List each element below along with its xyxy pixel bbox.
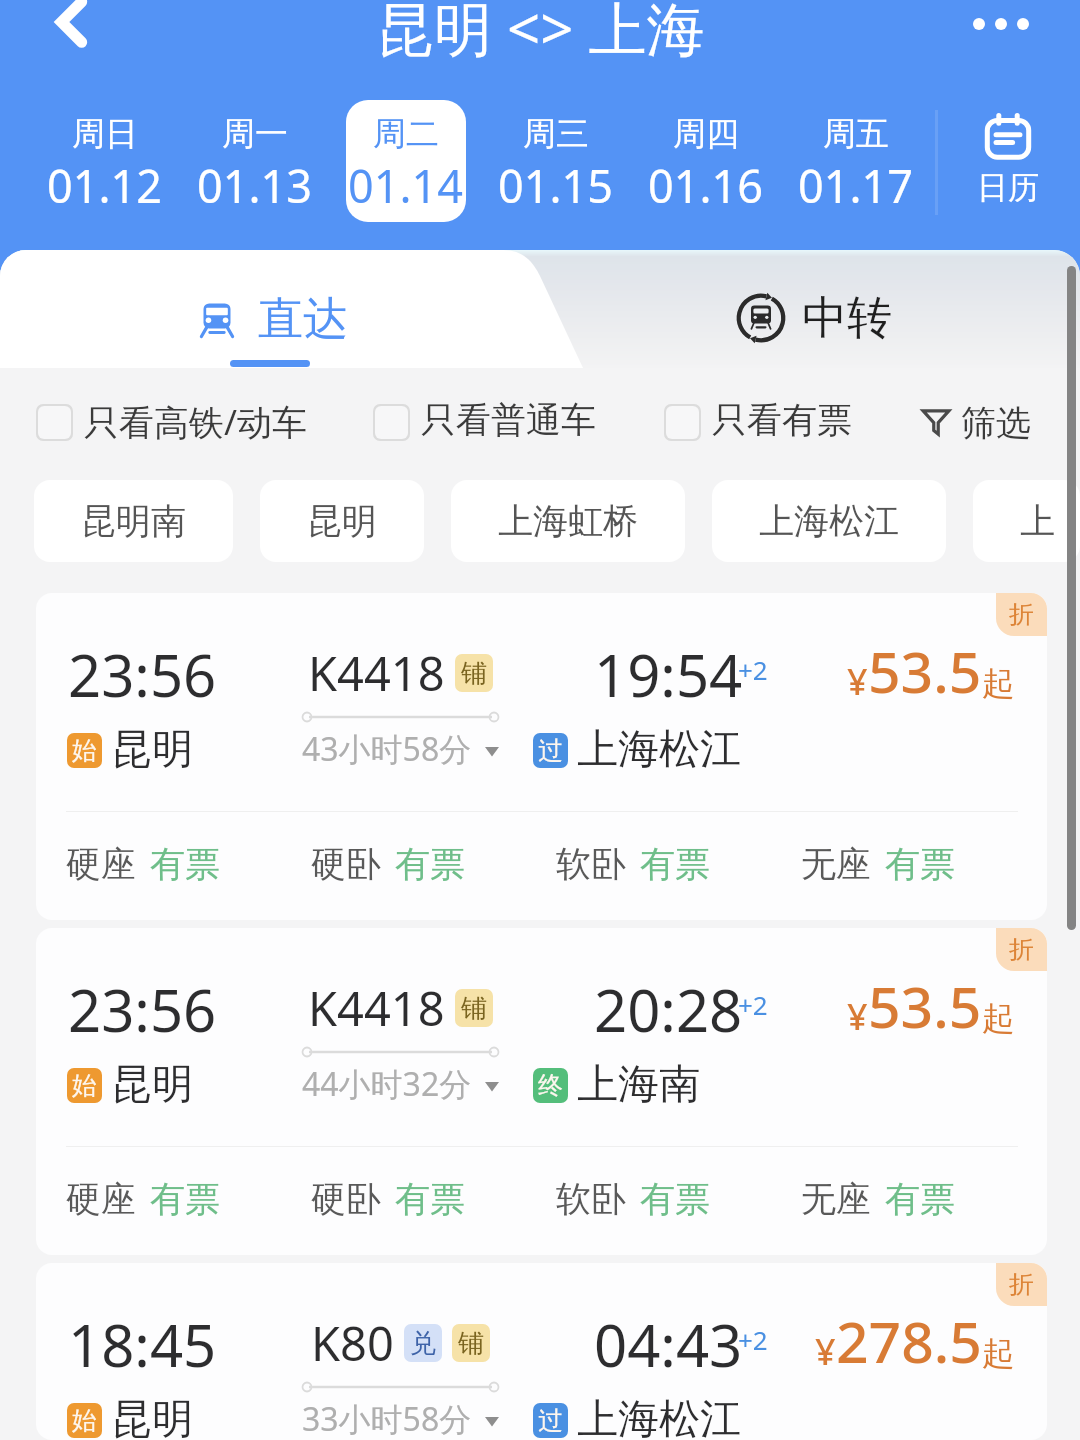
staticText: 23:56: [68, 635, 217, 714]
button[interactable]: Calendar: [948, 100, 1068, 222]
staticText: 只看高铁/动车: [84, 398, 308, 446]
button[interactable]: 周五: [796, 100, 916, 222]
staticText: 有票: [640, 842, 710, 886]
button[interactable]: 昆明南: [34, 480, 233, 562]
button[interactable]: More options: [965, 0, 1037, 60]
staticText: 始: [72, 735, 97, 766]
staticText: 无座: [801, 842, 871, 886]
staticText: 昆明 <> 上海: [376, 0, 705, 67]
staticText: 起: [982, 998, 1015, 1040]
button[interactable]: 上: [973, 480, 1080, 562]
staticText: 过: [538, 1405, 563, 1436]
staticText: 筛选: [961, 401, 1031, 445]
staticText: 278.5: [836, 1302, 982, 1380]
staticText: +2: [738, 987, 768, 1022]
button[interactable]: 周三: [496, 100, 616, 222]
button[interactable]: 直达: [198, 296, 348, 353]
staticText: 有票: [640, 1177, 710, 1221]
staticText: 01.12: [47, 155, 163, 216]
staticText: 04:43: [594, 1305, 743, 1384]
staticText: 铺: [461, 657, 487, 690]
staticText: 折: [1009, 1269, 1034, 1300]
staticText: 有票: [150, 1177, 220, 1221]
staticText: 折: [1009, 599, 1034, 630]
staticText: 硬座: [66, 842, 136, 886]
staticText: ¥: [847, 657, 868, 706]
staticText: 19:54: [594, 635, 743, 714]
staticText: 始: [72, 1070, 97, 1101]
staticText: 上海松江: [577, 1394, 741, 1440]
staticText: 中转: [802, 290, 892, 347]
staticText: 始: [72, 1405, 97, 1436]
staticText: 周四: [673, 113, 739, 155]
staticText: 01.13: [197, 155, 313, 216]
staticText: 昆明: [111, 1059, 193, 1111]
staticText: 周五: [823, 113, 889, 155]
button[interactable]: 只看有票: [664, 398, 852, 442]
button[interactable]: 周四: [646, 100, 766, 222]
staticText: 只看有票: [712, 398, 852, 442]
staticText: 起: [982, 663, 1015, 705]
staticText: 软卧: [556, 1177, 626, 1221]
staticText: 只看普通车: [421, 398, 596, 442]
staticText: 上海虹桥: [498, 499, 638, 543]
staticText: 硬座: [66, 1177, 136, 1221]
staticText: 53.5: [868, 967, 982, 1045]
button[interactable]: 筛选: [922, 405, 1031, 449]
button[interactable]: 只看普通车: [373, 398, 596, 442]
staticText: 有票: [885, 842, 955, 886]
staticText: 33小时58分: [302, 1397, 472, 1440]
staticText: 01.15: [498, 155, 614, 216]
staticText: 有票: [150, 842, 220, 886]
staticText: 硬卧: [311, 842, 381, 886]
staticText: 昆明: [111, 724, 193, 776]
button[interactable]: 周一: [195, 100, 315, 222]
staticText: 日历: [977, 168, 1039, 207]
button[interactable]: 上海松江: [712, 480, 946, 562]
staticText: 终: [538, 1070, 563, 1101]
staticText: 上海松江: [577, 724, 741, 776]
button[interactable]: 周二: [346, 100, 466, 222]
staticText: 有票: [395, 1177, 465, 1221]
staticText: 折: [1009, 934, 1034, 965]
staticText: 过: [538, 735, 563, 766]
staticText: 周一: [222, 113, 288, 155]
staticText: 18:45: [68, 1305, 217, 1384]
staticText: 周三: [523, 113, 589, 155]
button[interactable]: 上海虹桥: [451, 480, 685, 562]
button[interactable]: 中转: [736, 293, 892, 350]
staticText: 周二: [373, 113, 439, 155]
staticText: 无座: [801, 1177, 871, 1221]
staticText: 直达: [258, 291, 348, 348]
staticText: 有票: [395, 842, 465, 886]
staticText: 起: [982, 1333, 1015, 1375]
staticText: 铺: [458, 1327, 484, 1360]
staticText: 01.17: [798, 155, 914, 216]
staticText: 硬卧: [311, 1177, 381, 1221]
staticText: 周日: [72, 113, 138, 155]
staticText: 上海松江: [759, 499, 899, 543]
staticText: ¥: [815, 1327, 836, 1376]
button[interactable]: 昆明: [260, 480, 424, 562]
staticText: 铺: [461, 992, 487, 1025]
staticText: 53.5: [868, 632, 982, 710]
button[interactable]: 折: [36, 1263, 1047, 1440]
staticText: +2: [738, 652, 768, 687]
staticText: 01.14: [348, 155, 464, 216]
staticText: K4418: [308, 641, 445, 705]
button[interactable]: Back: [36, 0, 108, 58]
staticText: K4418: [308, 976, 445, 1040]
button[interactable]: 折: [36, 593, 1047, 920]
staticText: 上海南: [577, 1059, 700, 1111]
staticText: +2: [738, 1322, 768, 1357]
button[interactable]: 只看高铁/动车: [36, 398, 308, 446]
staticText: 01.16: [648, 155, 764, 216]
staticText: 昆明南: [81, 499, 186, 543]
staticText: K80: [311, 1311, 394, 1375]
staticText: 20:28: [594, 970, 743, 1049]
button[interactable]: 折: [36, 928, 1047, 1255]
staticText: 昆明: [307, 499, 377, 543]
staticText: 上: [1020, 499, 1033, 543]
staticText: 43小时58分: [302, 727, 472, 771]
button[interactable]: 周日: [45, 100, 165, 222]
